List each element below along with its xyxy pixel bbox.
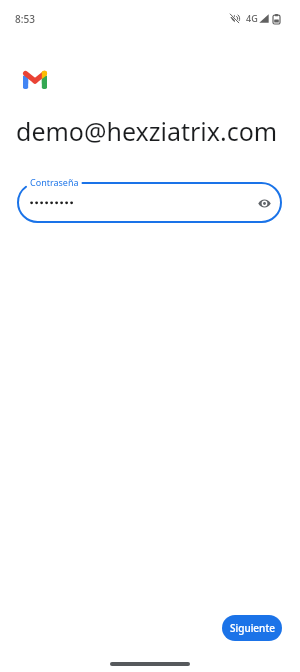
staticText: Contraseña (30, 176, 79, 188)
staticText: demo@hexziatrix.com (16, 114, 278, 148)
staticText: 4G (246, 12, 258, 24)
staticText: Siguiente (230, 621, 275, 635)
button[interactable]: Mostrar contraseña (250, 189, 278, 217)
button[interactable]: Siguiente (222, 615, 282, 641)
staticText: 8:53 (15, 12, 35, 26)
button[interactable]: Contraseña (17, 182, 282, 223)
